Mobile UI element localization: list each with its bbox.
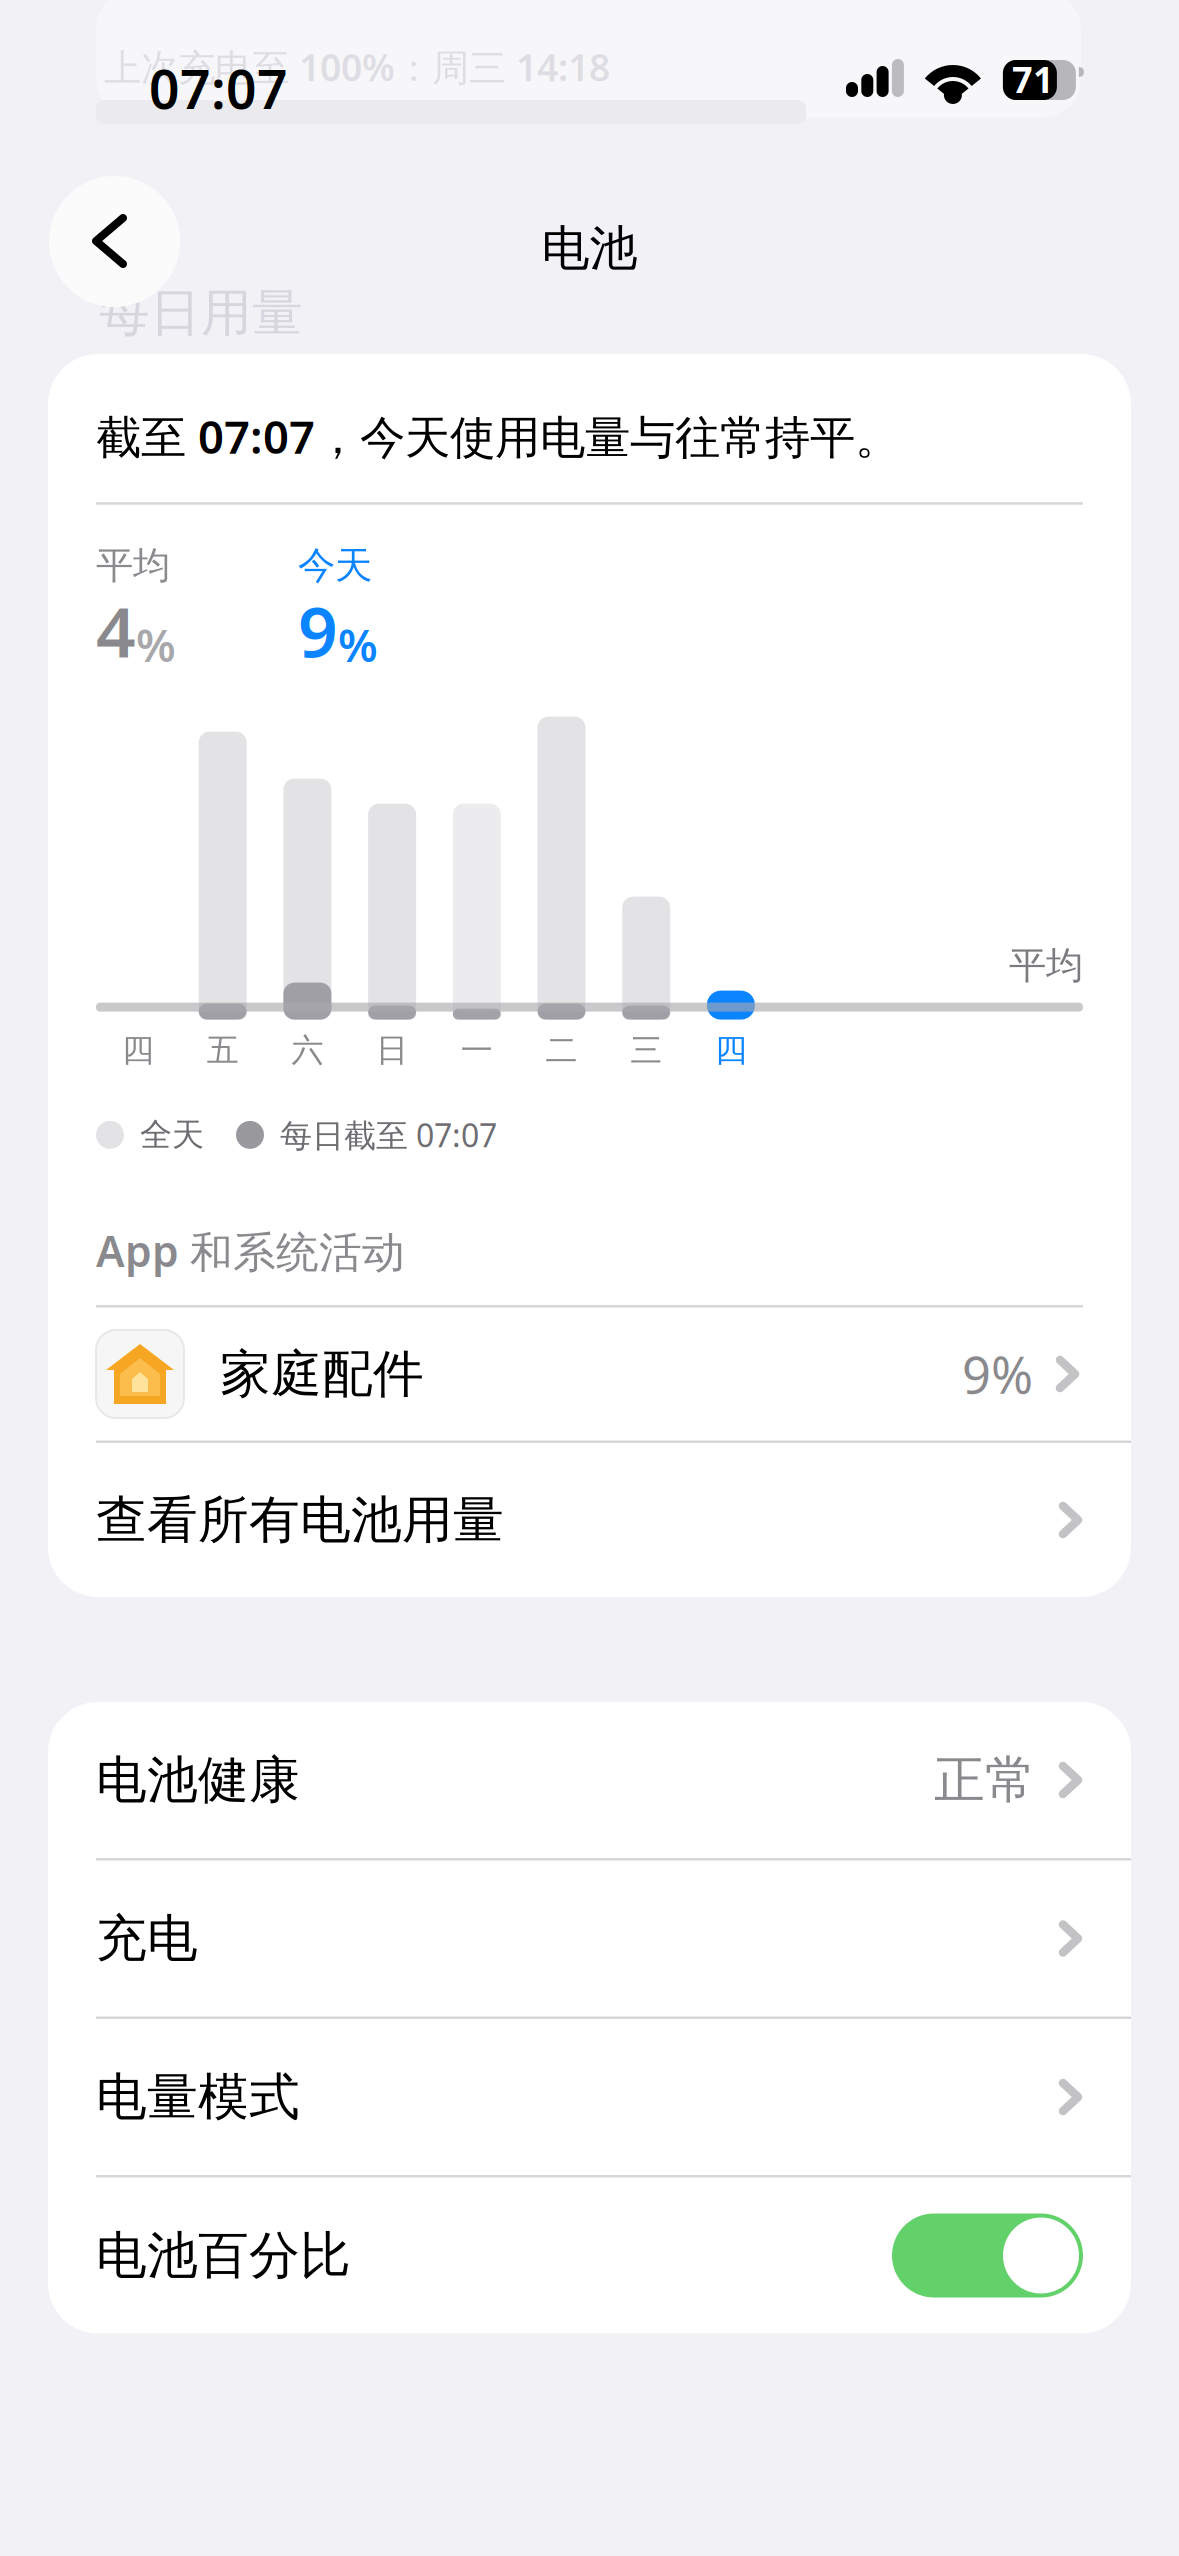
staticText: 平均 <box>96 543 170 589</box>
staticText: 四 <box>122 1031 154 1070</box>
button[interactable]: 电量模式 <box>48 2019 1131 2175</box>
button[interactable]: 家庭配件 <box>48 1307 1131 1440</box>
staticText: App 和系统活动 <box>96 1222 405 1279</box>
button[interactable]: 返回 <box>49 176 180 307</box>
staticText: 电量模式 <box>96 2066 300 2128</box>
staticText: 家庭配件 <box>220 1343 424 1405</box>
staticText: 电池 <box>541 219 637 278</box>
staticText: % <box>338 614 378 675</box>
staticText: 二 <box>545 1031 577 1070</box>
button[interactable]: 电池健康 <box>48 1702 1131 1858</box>
staticText: 每日用量 <box>99 282 303 344</box>
staticText: 71 <box>1012 55 1054 103</box>
staticText: 07:07 <box>149 53 288 124</box>
staticText: 电池健康 <box>96 1749 300 1811</box>
staticText: 五 <box>207 1031 239 1070</box>
staticText: 全天 <box>140 1115 204 1154</box>
staticText: 上次充电至 100%：周三 14:18 <box>104 42 610 92</box>
button[interactable]: 查看所有电池用量 <box>48 1443 1131 1597</box>
staticText: 充电 <box>96 1907 198 1970</box>
staticText: 今天 <box>298 543 372 589</box>
staticText: % <box>136 614 176 675</box>
staticText: 查看所有电池用量 <box>96 1489 504 1551</box>
staticText: 日 <box>376 1031 408 1070</box>
staticText: 截至 07:07，今天使用电量与往常持平。 <box>96 406 900 466</box>
staticText: 9% <box>962 1340 1033 1408</box>
staticText: 4 <box>96 585 136 677</box>
staticText: 电池百分比 <box>96 2224 351 2287</box>
staticText: 三 <box>630 1031 662 1070</box>
staticText: 一 <box>461 1031 493 1070</box>
staticText: 四 <box>715 1031 747 1070</box>
button[interactable]: 充电 <box>48 1860 1131 2016</box>
button[interactable]: 电池百分比 <box>48 2177 1131 2333</box>
staticText: 每日截至 07:07 <box>280 1114 497 1156</box>
staticText: 正常 <box>934 1749 1036 1811</box>
staticText: 平均 <box>1009 943 1083 988</box>
staticText: 9 <box>298 585 338 677</box>
staticText: 六 <box>291 1031 323 1070</box>
